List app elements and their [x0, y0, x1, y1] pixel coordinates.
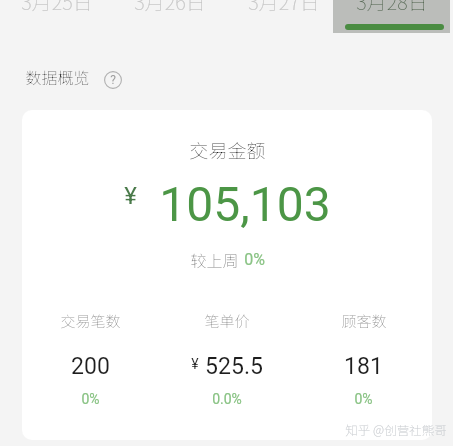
staticText: 3月26日	[134, 0, 206, 13]
staticText: 笔单价	[204, 310, 250, 332]
button[interactable]: 3月25日	[3, 0, 111, 33]
staticText: 0%	[354, 391, 373, 407]
button[interactable]: 交易笔数	[22, 310, 158, 407]
staticText: 3月27日	[248, 0, 320, 13]
button[interactable]: 3月26日	[113, 0, 226, 33]
staticText: ?	[110, 73, 116, 87]
staticText: 3月25日	[21, 0, 93, 13]
staticText: 525.5	[205, 353, 263, 380]
staticText: ¥	[191, 356, 199, 372]
staticText: 105,103	[159, 176, 331, 232]
staticText: 3月28日	[356, 0, 428, 13]
staticText: 顾客数	[341, 310, 387, 332]
staticText: 200	[71, 353, 110, 380]
staticText: 0.0%	[212, 391, 242, 407]
button[interactable]: 3月27日	[232, 0, 336, 33]
staticText: 0%	[81, 391, 100, 407]
staticText: 较上周	[190, 248, 239, 271]
button[interactable]: 顾客数	[295, 310, 432, 407]
staticText: 知乎 @创营社熊哥	[345, 420, 447, 438]
staticText: 交易金额	[189, 136, 266, 164]
staticText: 0%	[244, 250, 265, 269]
button[interactable]: 帮助	[104, 71, 122, 89]
button[interactable]: 3月28日	[333, 0, 450, 33]
staticText: 181	[344, 353, 383, 380]
staticText: 数据概览	[25, 65, 90, 88]
staticText: ¥	[124, 182, 137, 210]
staticText: 交易笔数	[60, 310, 121, 332]
button[interactable]: 笔单价	[158, 310, 295, 407]
